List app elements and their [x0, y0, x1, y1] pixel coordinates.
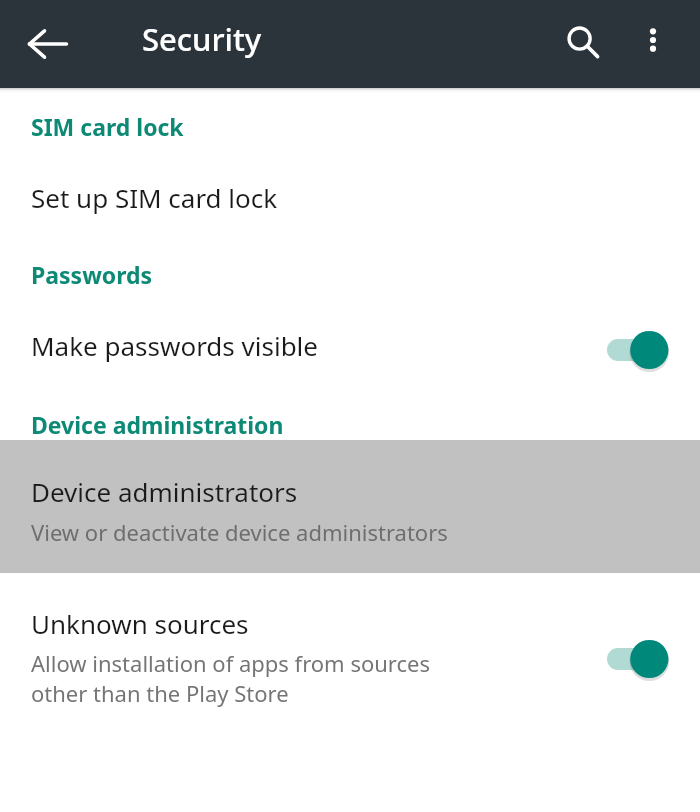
button[interactable]: Unknown sources	[0, 582, 700, 735]
button[interactable]: Make passwords visible	[0, 290, 700, 409]
staticText: Make passwords visible	[31, 328, 318, 363]
staticText: Passwords	[31, 259, 153, 290]
staticText: Security	[142, 18, 262, 60]
staticText: Device administrators	[31, 474, 298, 509]
button[interactable]: Navigate up	[14, 10, 82, 78]
staticText: SIM card lock	[31, 111, 184, 142]
staticText: Device administration	[31, 409, 284, 440]
button[interactable]: More options	[622, 9, 684, 71]
staticText: View or deactivate device administrators	[31, 517, 448, 547]
staticText: Set up SIM card lock	[31, 180, 278, 215]
button[interactable]: Set up SIM card lock	[0, 142, 700, 259]
button[interactable]: Toggle Make passwords visible	[600, 321, 678, 379]
staticText: Allow installation of apps from sources …	[31, 648, 430, 709]
button[interactable]: Device administrators	[0, 440, 700, 573]
button[interactable]: Toggle Unknown sources	[600, 630, 678, 688]
staticText: Unknown sources	[31, 606, 249, 641]
button[interactable]: Search	[550, 9, 616, 75]
